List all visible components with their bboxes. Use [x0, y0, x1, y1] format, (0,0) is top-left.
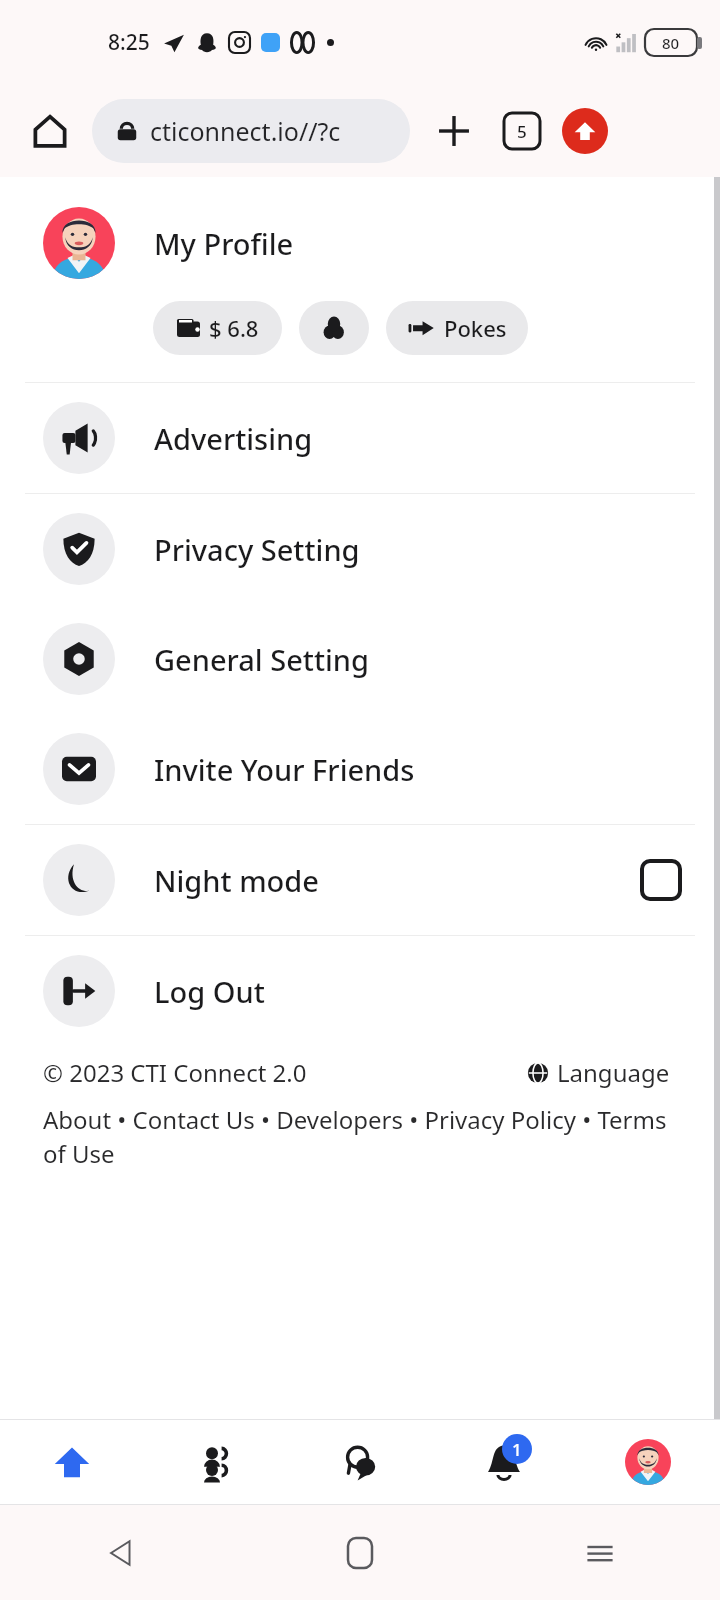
- button[interactable]: [299, 301, 369, 355]
- button[interactable]: Friends: [144, 1420, 288, 1504]
- staticText: 8:25: [108, 28, 150, 57]
- button[interactable]: Invite Your Friends: [0, 714, 720, 824]
- staticText: 5: [517, 120, 527, 143]
- button[interactable]: Tabs, 5 open: [496, 105, 548, 157]
- button[interactable]: Notifications: [432, 1420, 576, 1504]
- staticText: About • Contact Us • Developers • Privac…: [43, 1103, 670, 1170]
- staticText: Night mode: [154, 861, 319, 900]
- staticText: cticonnect.io//?c: [150, 114, 341, 148]
- button[interactable]: Home: [24, 105, 76, 157]
- button[interactable]: Messages: [288, 1420, 432, 1504]
- staticText: $ 6.8: [209, 313, 259, 343]
- staticText: 80: [662, 33, 680, 53]
- staticText: Privacy Setting: [154, 530, 360, 569]
- button[interactable]: Profile: [576, 1420, 720, 1504]
- staticText: My Profile: [154, 224, 294, 263]
- button[interactable]: My Profile: [0, 199, 720, 287]
- button[interactable]: Home: [0, 1420, 144, 1504]
- staticText: Language: [557, 1056, 670, 1089]
- button[interactable]: Privacy Setting: [0, 494, 720, 604]
- button[interactable]: Update: [562, 108, 608, 154]
- button[interactable]: cticonnect.io//?c: [92, 99, 410, 163]
- staticText: Invite Your Friends: [154, 750, 415, 789]
- button[interactable]: Home: [240, 1505, 480, 1600]
- staticText: 1: [512, 1438, 522, 1461]
- button[interactable]: Recents: [480, 1505, 720, 1600]
- button[interactable]: $ 6.8: [153, 301, 282, 355]
- staticText: Pokes: [444, 313, 507, 343]
- button[interactable]: Advertising: [0, 383, 720, 493]
- staticText: Advertising: [154, 419, 313, 458]
- button[interactable]: Log Out: [0, 936, 720, 1046]
- button[interactable]: General Setting: [0, 604, 720, 714]
- staticText: Log Out: [154, 972, 265, 1011]
- staticText: General Setting: [154, 640, 370, 679]
- button[interactable]: Night mode: [0, 825, 720, 935]
- staticText: © 2023 CTI Connect 2.0: [43, 1056, 307, 1089]
- button[interactable]: New tab: [428, 105, 480, 157]
- button[interactable]: Back: [0, 1505, 240, 1600]
- button[interactable]: Pokes: [386, 301, 528, 355]
- button[interactable]: Language: [527, 1056, 670, 1089]
